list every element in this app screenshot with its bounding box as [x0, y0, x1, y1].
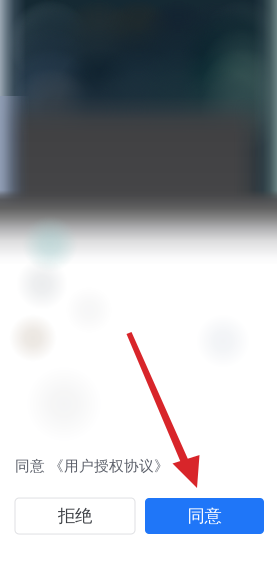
- staticText: 拒绝: [58, 505, 92, 527]
- staticText: 同意 《用户授权协议》: [15, 457, 169, 475]
- button[interactable]: 同意: [145, 498, 264, 534]
- staticText: 同意: [187, 505, 221, 527]
- button[interactable]: 拒绝: [15, 498, 135, 534]
